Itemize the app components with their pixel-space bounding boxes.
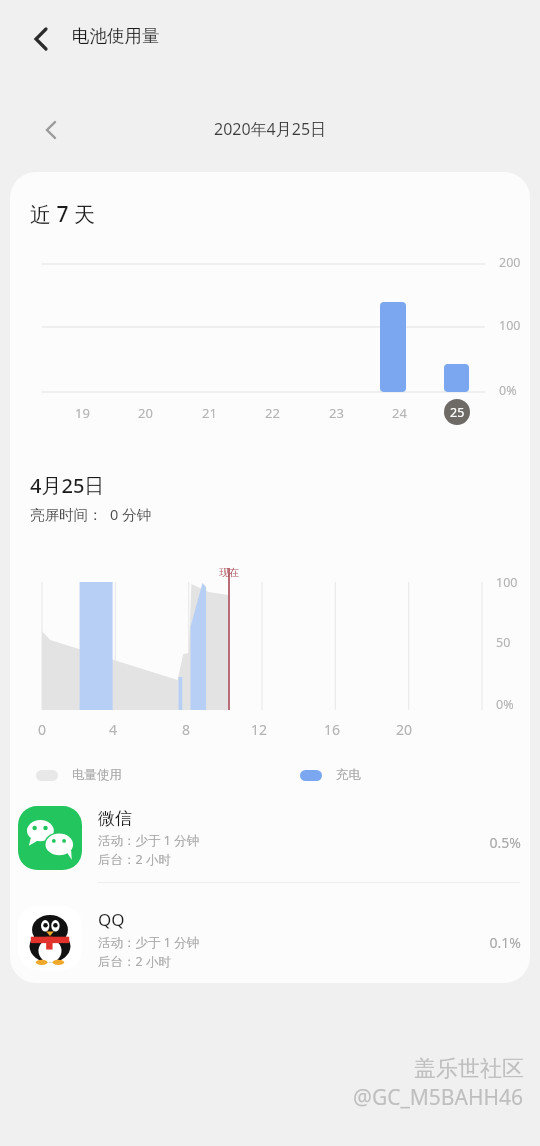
button[interactable]: 25 — [444, 399, 470, 425]
staticText: @GC_M5BAHH46 — [353, 1083, 524, 1112]
staticText: 20 — [396, 720, 413, 739]
staticText: 微信 — [98, 808, 132, 829]
button[interactable]: 微信 — [10, 802, 530, 882]
staticText: 12 — [251, 720, 268, 739]
staticText: 电池使用量 — [72, 25, 160, 47]
staticText: 2020年4月25日 — [214, 118, 327, 140]
staticText: 100 — [499, 317, 521, 334]
staticText: 0.5% — [489, 833, 521, 852]
staticText: 16 — [324, 720, 341, 739]
staticText: 19 — [75, 404, 90, 422]
staticText: 亮屏时间： 0 分钟 — [30, 504, 152, 524]
button[interactable]: Back — [22, 20, 60, 58]
staticText: 21 — [202, 404, 217, 422]
staticText: 200 — [499, 254, 521, 271]
staticText: 活动：少于 1 分钟 — [98, 832, 200, 849]
staticText: 24 — [392, 404, 407, 422]
staticText: 后台：2 小时 — [98, 851, 171, 868]
staticText: 后台：2 小时 — [98, 953, 171, 970]
staticText: 盖乐世社区 — [414, 1055, 524, 1083]
staticText: 充电 — [336, 767, 361, 783]
staticText: 23 — [329, 404, 344, 422]
staticText: 8 — [182, 720, 191, 739]
staticText: 0 — [38, 720, 47, 739]
staticText: 0.1% — [489, 933, 521, 952]
staticText: 50 — [496, 634, 511, 651]
staticText: QQ — [98, 908, 125, 931]
button[interactable]: QQ — [10, 902, 530, 982]
staticText: 电量使用 — [72, 767, 122, 783]
staticText: 100 — [496, 574, 518, 591]
staticText: 4月25日 — [30, 472, 105, 499]
staticText: 0% — [499, 382, 517, 399]
button[interactable]: Previous day — [34, 113, 68, 147]
staticText: 0% — [496, 696, 514, 713]
staticText: 20 — [138, 404, 153, 422]
staticText: 22 — [265, 404, 280, 422]
staticText: 近 7 天 — [30, 200, 95, 229]
staticText: 现在 — [219, 566, 239, 579]
staticText: 25 — [450, 404, 465, 421]
staticText: 4 — [109, 720, 118, 739]
staticText: 活动：少于 1 分钟 — [98, 934, 200, 951]
